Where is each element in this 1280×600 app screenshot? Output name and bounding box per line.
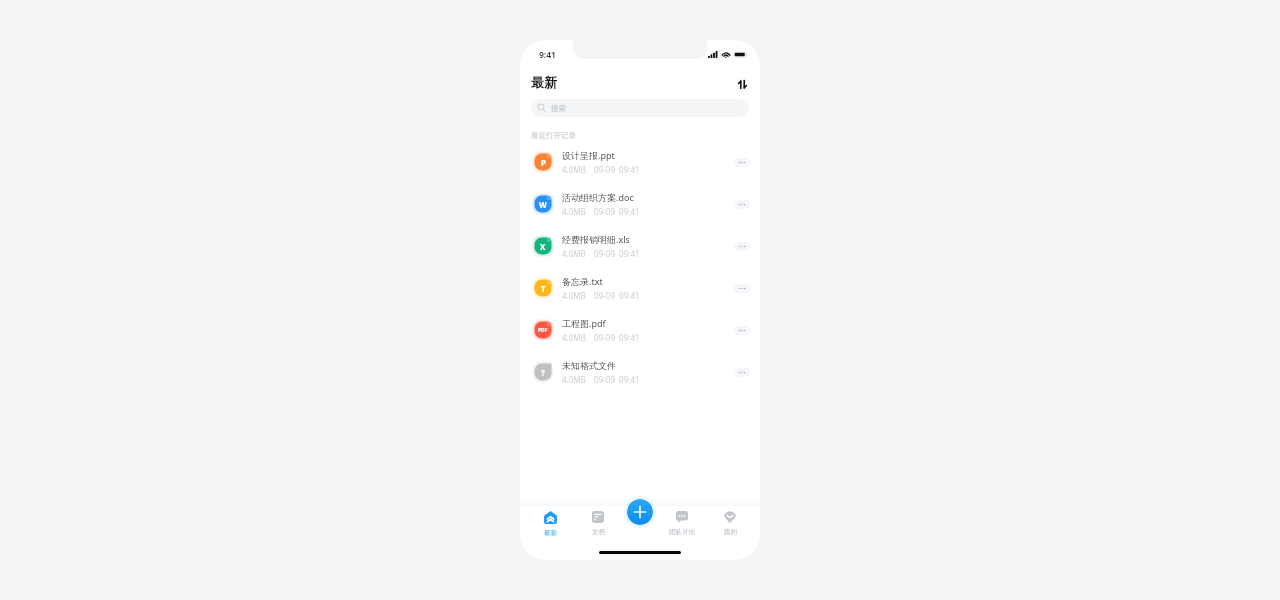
button[interactable]: 搜索 (531, 99, 749, 117)
button[interactable]: 新建 (627, 499, 653, 525)
staticText: 活动组织方案.doc (562, 191, 634, 203)
staticText: 文档 (592, 528, 605, 536)
staticText: 经费报销明细.xls (562, 233, 630, 245)
button[interactable]: 更多 (734, 242, 750, 251)
staticText: ? (541, 367, 545, 378)
staticText: 未知格式文件 (562, 360, 616, 371)
staticText: 9:41 (539, 49, 556, 61)
button[interactable]: 更多 (734, 326, 750, 335)
button[interactable]: T (520, 267, 760, 309)
button[interactable]: 更多 (734, 368, 750, 377)
button[interactable]: 我的 (706, 511, 754, 536)
button[interactable]: 排序 (735, 77, 750, 92)
staticText: PDF (538, 327, 548, 334)
button[interactable]: 文档 (574, 511, 622, 536)
button[interactable]: 更多 (734, 200, 750, 209)
staticText: 最新 (544, 529, 557, 537)
button[interactable]: ? (520, 351, 760, 393)
staticText: 工程图.pdf (562, 317, 606, 329)
staticText: 4.0MB 09-09 09:41 (562, 206, 640, 217)
staticText: P (541, 157, 546, 168)
button[interactable]: 更多 (734, 284, 750, 293)
button[interactable]: P (520, 141, 760, 183)
staticText: 4.0MB 09-09 09:41 (562, 164, 640, 175)
button[interactable]: 最新 (526, 511, 574, 537)
staticText: 备忘录.txt (562, 275, 603, 287)
button[interactable]: X (520, 225, 760, 267)
staticText: 4.0MB 09-09 09:41 (562, 248, 640, 259)
button[interactable]: 团队讨论 (658, 511, 706, 536)
staticText: 我的 (724, 528, 737, 536)
staticText: 最近打开记录 (531, 131, 576, 140)
staticText: 4.0MB 09-09 09:41 (562, 374, 640, 385)
staticText: 最新 (531, 74, 557, 90)
button[interactable]: PDF (520, 309, 760, 351)
staticText: W (539, 199, 547, 210)
staticText: X (540, 241, 546, 252)
staticText: 团队讨论 (669, 528, 695, 536)
staticText: T (541, 283, 546, 294)
staticText: 4.0MB 09-09 09:41 (562, 290, 640, 301)
button[interactable]: W (520, 183, 760, 225)
staticText: 4.0MB 09-09 09:41 (562, 332, 640, 343)
button[interactable]: 更多 (734, 158, 750, 167)
staticText: 设计呈报.ppt (562, 149, 615, 161)
staticText: 搜索 (551, 104, 566, 113)
